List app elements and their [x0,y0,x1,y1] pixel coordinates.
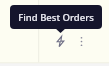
button[interactable]: More options [74,34,89,49]
staticText: Find Best Orders [18,11,94,24]
button[interactable]: Find Best Orders [53,34,68,49]
button[interactable]: Find Best Orders [10,5,102,29]
